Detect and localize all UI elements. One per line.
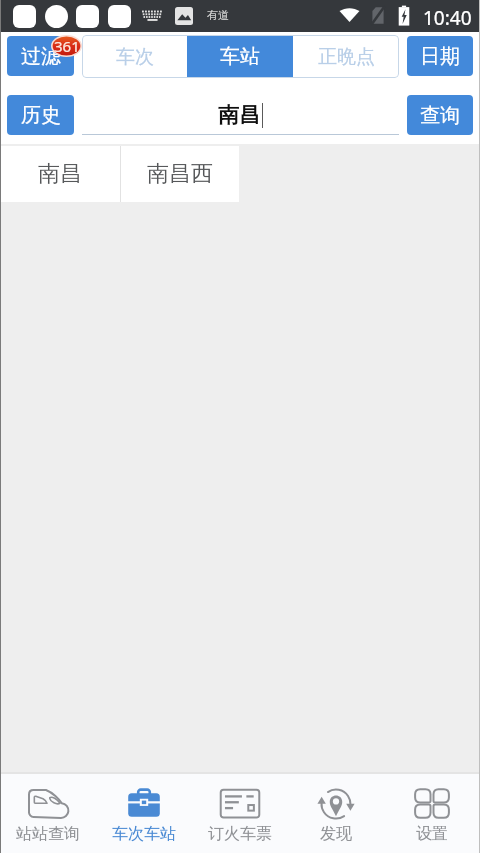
button[interactable]: Settings <box>384 774 480 853</box>
button[interactable]: Station query <box>0 774 96 853</box>
staticText: 订火车票 <box>208 824 272 844</box>
staticText: 南昌 <box>218 102 260 128</box>
staticText: 过滤 <box>21 44 61 69</box>
button[interactable]: 南昌西 <box>121 146 239 202</box>
button[interactable]: Trains and stations <box>96 774 192 853</box>
staticText: 南昌西 <box>147 160 213 188</box>
staticText: 发现 <box>320 824 352 844</box>
button[interactable]: 日期 <box>407 36 473 76</box>
staticText: 历史 <box>21 103 61 128</box>
staticText: 10:40 <box>423 5 472 31</box>
staticText: 正晩点 <box>318 45 375 69</box>
staticText: 361 <box>54 36 80 56</box>
staticText: 车次 <box>116 45 154 69</box>
button[interactable]: Discover <box>288 774 384 853</box>
staticText: 车站 <box>220 44 260 69</box>
staticText: 车次车站 <box>112 824 176 844</box>
button[interactable]: 正晩点 <box>293 35 399 78</box>
button[interactable]: Book tickets <box>192 774 288 853</box>
staticText: 日期 <box>420 44 460 69</box>
button[interactable]: 过滤 <box>7 36 74 76</box>
staticText: 有道 <box>207 8 229 22</box>
button[interactable]: 车次 <box>82 35 187 78</box>
staticText: 南昌 <box>38 160 82 188</box>
button[interactable]: 查询 <box>407 95 473 135</box>
button[interactable]: 车站 <box>187 35 293 78</box>
staticText: 查询 <box>420 103 460 128</box>
button[interactable]: 历史 <box>7 95 74 135</box>
staticText: 站站查询 <box>16 824 80 844</box>
staticText: 设置 <box>416 824 448 844</box>
button[interactable]: 南昌 <box>0 146 120 202</box>
